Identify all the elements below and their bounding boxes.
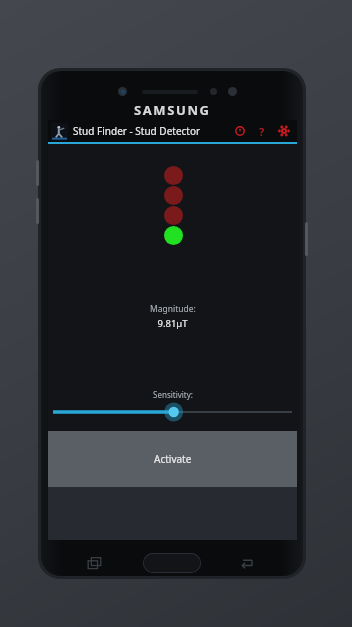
button[interactable]: Activate: [48, 431, 297, 487]
button[interactable]: Sensitivity slider: [48, 404, 297, 420]
staticText: SAMSUNG: [134, 101, 211, 119]
staticText: Sensitivity:: [153, 389, 193, 400]
staticText: 9.81µT: [157, 317, 188, 330]
staticText: Stud Finder - Stud Detector: [73, 124, 201, 138]
button[interactable]: History: [229, 120, 251, 142]
staticText: Magnitude:: [150, 303, 196, 315]
button[interactable]: Settings: [273, 120, 295, 142]
button[interactable]: Help: [251, 120, 273, 142]
staticText: ?: [259, 124, 265, 139]
button[interactable]: Home: [143, 553, 201, 573]
staticText: Activate: [154, 452, 192, 466]
button[interactable]: Recents: [86, 556, 104, 570]
button[interactable]: Back: [238, 556, 256, 570]
